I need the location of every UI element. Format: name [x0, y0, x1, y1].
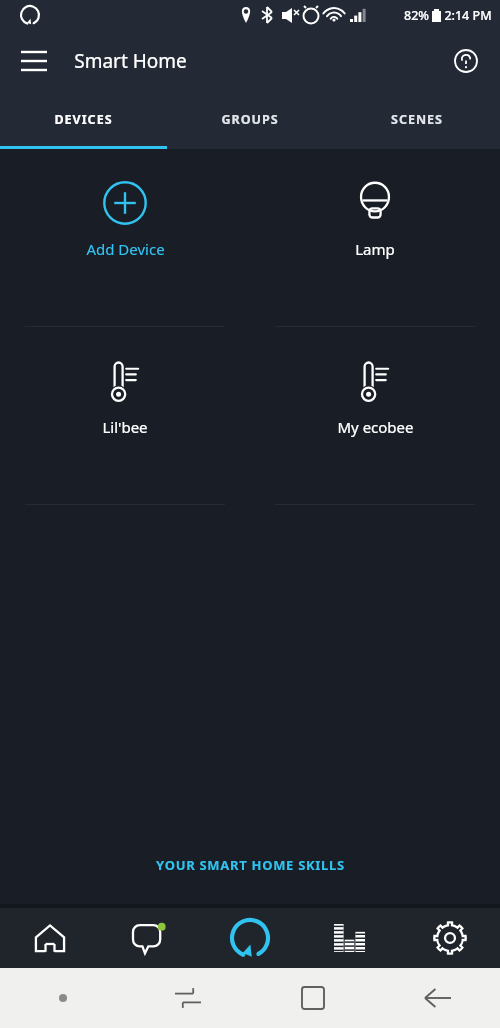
button[interactable]: Menu: [12, 39, 56, 83]
staticText: GROUPS: [221, 111, 279, 128]
staticText: DEVICES: [54, 111, 113, 128]
staticText: Lil'bee: [102, 417, 148, 437]
button[interactable]: Switch apps: [125, 968, 250, 1028]
staticText: Add Device: [86, 239, 165, 259]
staticText: 2:14 PM: [444, 7, 492, 24]
staticText: 82%: [404, 7, 429, 24]
button[interactable]: GROUPS: [166, 92, 333, 146]
button[interactable]: Settings: [400, 908, 500, 968]
button[interactable]: Back: [375, 968, 500, 1028]
button[interactable]: Lil'bee: [0, 327, 250, 505]
button[interactable]: SCENES: [333, 92, 500, 146]
button[interactable]: Home: [0, 908, 100, 968]
staticText: SCENES: [391, 111, 443, 128]
button[interactable]: Music: [300, 908, 400, 968]
button[interactable]: Recents: [250, 968, 375, 1028]
button[interactable]: DEVICES: [0, 92, 166, 146]
button[interactable]: Lamp: [250, 149, 500, 327]
staticText: My ecobee: [337, 417, 414, 437]
button[interactable]: Help: [444, 39, 488, 83]
staticText: Lamp: [355, 239, 395, 259]
staticText: YOUR SMART HOME SKILLS: [156, 856, 345, 874]
staticText: Smart Home: [74, 48, 187, 74]
button[interactable]: Add Device: [0, 149, 250, 327]
button[interactable]: Messages: [100, 908, 200, 968]
button[interactable]: YOUR SMART HOME SKILLS: [0, 856, 500, 874]
button[interactable]: Alexa: [200, 908, 300, 968]
button[interactable]: Assistant: [0, 968, 125, 1028]
button[interactable]: My ecobee: [250, 327, 500, 505]
